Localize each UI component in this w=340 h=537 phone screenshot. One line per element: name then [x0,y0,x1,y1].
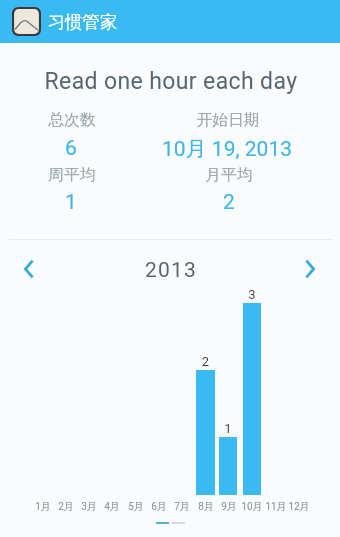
staticText: 1 [0,190,161,215]
staticText: 3月 [69,500,109,513]
button[interactable]: Monthly completions chart [0,290,340,520]
staticText: 9月 [209,500,249,513]
staticText: 总次数 [0,110,162,130]
staticText: 习惯管家 [48,11,118,33]
button[interactable]: 习惯管家 — home [0,0,124,43]
staticText: 周平均 [0,165,162,185]
staticText: 5月 [116,500,156,513]
staticText: 2月 [46,500,86,513]
staticText: 月平均 [139,165,319,185]
button[interactable]: Page 2 [166,515,186,529]
staticText: 2013 [1,258,340,283]
staticText: 1 [199,421,257,436]
staticText: 开始日期 [138,110,318,130]
staticText: Read one hour each day [1,68,340,95]
staticText: 7月 [162,500,202,513]
staticText: 2 [139,190,319,215]
button[interactable]: Next year [289,248,331,290]
button[interactable]: Previous year [8,248,50,290]
staticText: 6 [0,136,161,161]
staticText: 4月 [92,500,132,513]
staticText: 11月 [256,500,296,513]
staticText: 1月 [23,500,63,513]
staticText: 10月 19, 2013 [137,136,317,162]
staticText: 3 [223,287,281,302]
button[interactable]: Page 1, selected [150,515,170,529]
staticText: 8月 [186,500,226,513]
staticText: 2 [176,354,235,369]
staticText: 10月 [232,500,272,513]
staticText: 6月 [139,500,179,513]
staticText: 12月 [279,500,319,513]
